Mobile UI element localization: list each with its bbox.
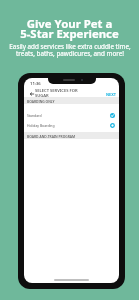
button[interactable]: Standard — [24, 110, 119, 120]
staticText: BOARDING ONLY — [27, 99, 55, 103]
staticText: Standard — [27, 113, 110, 118]
staticText: BOARD-AND-TRAIN PROGRAM — [27, 134, 76, 138]
button[interactable]: Holiday Boarding — [24, 120, 119, 130]
button[interactable]: NEXT — [105, 91, 117, 98]
staticText: SELECT SERVICES FOR SUGAR — [35, 88, 78, 98]
staticText: 11:36 — [30, 81, 41, 87]
staticText: NEXT — [106, 92, 116, 97]
staticText: Holiday Boarding — [27, 123, 110, 128]
button[interactable]: Back — [28, 90, 36, 98]
staticText: Easily add services like extra cuddle ti… — [9, 42, 131, 57]
staticText: Give Your Pet a 5-Star Experience — [20, 16, 119, 41]
